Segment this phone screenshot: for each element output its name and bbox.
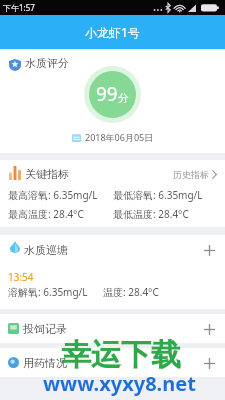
staticText: 历史指标	[173, 169, 209, 180]
staticText: 最低溶氧: 6.35mg/L	[113, 188, 203, 202]
staticText: 2018年06月05日	[85, 131, 154, 143]
staticText: 用药情况	[23, 356, 67, 370]
staticText: 投饲记录	[23, 322, 67, 336]
staticText: 关键指标	[25, 167, 69, 181]
button[interactable]: 添加记录	[200, 241, 218, 259]
staticText: 水质巡塘	[24, 243, 68, 257]
staticText: 温度: 28.4°C	[103, 285, 159, 299]
staticText: 水质评分	[25, 56, 69, 70]
button[interactable]: 添加记录	[200, 354, 218, 372]
staticText: 最低温度: 28.4°C	[113, 207, 189, 221]
staticText: 下午1:57	[3, 2, 35, 13]
staticText: www.xyxy8.net	[43, 370, 196, 397]
staticText: 13:54	[8, 270, 34, 284]
staticText: 最高溶氧: 6.35mg/L	[8, 188, 113, 202]
staticText: 最高温度: 28.4°C	[8, 207, 113, 221]
button[interactable]: 添加记录	[200, 320, 218, 338]
button[interactable]: 小龙虾1号	[0, 15, 225, 49]
staticText: 小龙虾1号	[85, 24, 140, 40]
staticText: 幸运下载	[61, 336, 181, 374]
button[interactable]: 历史指标	[173, 169, 218, 180]
staticText: 99	[96, 81, 118, 107]
staticText: 溶解氧: 6.35mg/L	[8, 285, 103, 299]
staticText: 分	[118, 91, 129, 105]
